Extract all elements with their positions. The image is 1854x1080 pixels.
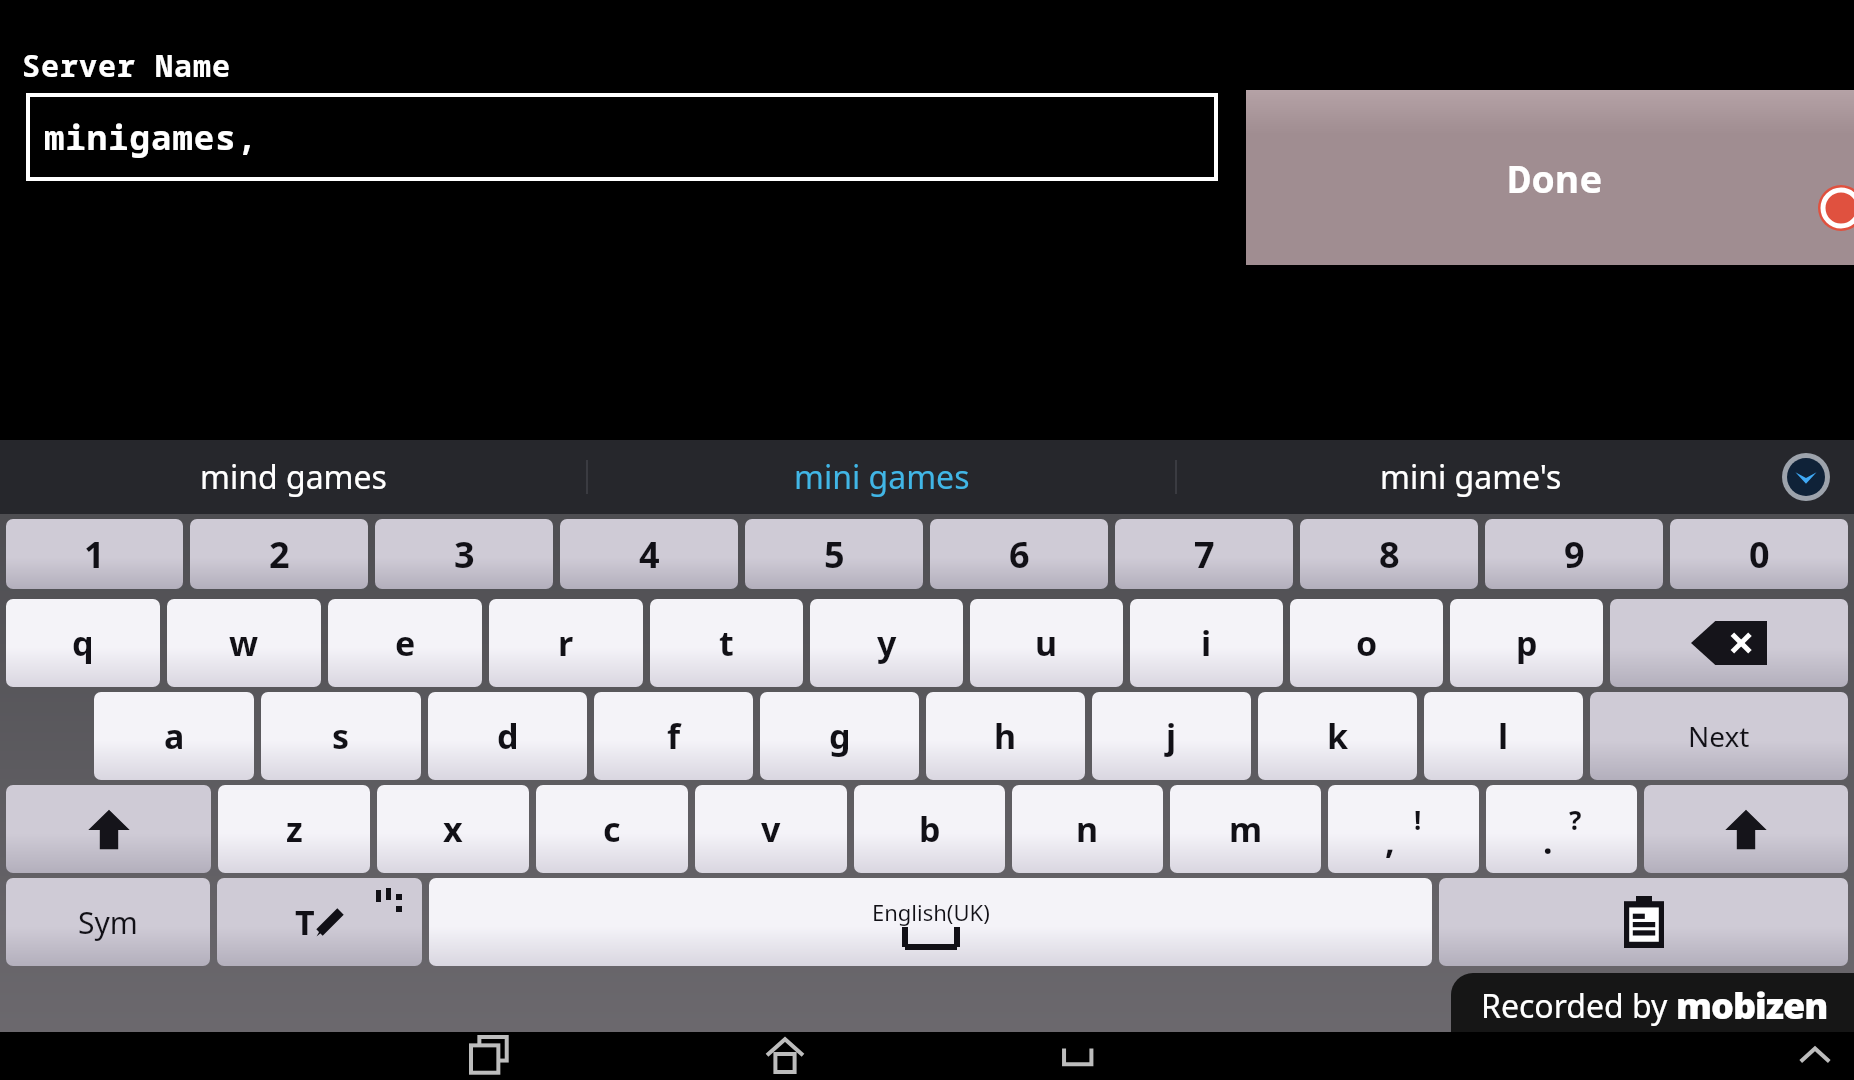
staticText: 7 <box>1194 530 1215 579</box>
staticText: a <box>164 713 185 759</box>
staticText: . <box>1543 818 1553 864</box>
staticText: f <box>667 713 681 759</box>
button[interactable]: , <box>1328 785 1479 873</box>
staticText: mind games <box>200 455 387 499</box>
staticText: Done <box>1508 152 1604 204</box>
button[interactable]: m <box>1170 785 1321 873</box>
staticText: i <box>1201 620 1212 666</box>
button[interactable]: n <box>1012 785 1163 873</box>
staticText: English(UK) <box>872 897 990 927</box>
button[interactable]: Shift <box>6 785 211 873</box>
button[interactable]: o <box>1290 599 1443 687</box>
button[interactable]: l <box>1424 692 1583 780</box>
button[interactable]: p <box>1450 599 1603 687</box>
button[interactable]: 7 <box>1115 519 1293 589</box>
staticText: 8 <box>1379 530 1400 579</box>
button[interactable]: Back <box>1052 1032 1108 1080</box>
staticText: l <box>1498 713 1509 759</box>
button[interactable]: Home <box>757 1032 813 1080</box>
staticText: Sym <box>78 902 138 943</box>
staticText: u <box>1035 620 1058 666</box>
button[interactable]: Backspace <box>1610 599 1848 687</box>
staticText: m <box>1229 806 1263 852</box>
button[interactable]: x <box>377 785 529 873</box>
staticText: ! <box>1414 802 1422 837</box>
button[interactable]: 0 <box>1670 519 1848 589</box>
staticText: e <box>395 620 416 666</box>
button[interactable]: f <box>594 692 753 780</box>
button[interactable]: d <box>428 692 587 780</box>
button[interactable]: Change input method <box>217 878 422 966</box>
button[interactable]: a <box>94 692 254 780</box>
button[interactable]: Expand suggestions <box>1780 451 1832 503</box>
button[interactable]: c <box>536 785 688 873</box>
button[interactable]: mini game's <box>1177 440 1764 514</box>
staticText: h <box>994 713 1017 759</box>
button[interactable]: Sym <box>6 878 210 966</box>
button[interactable]: i <box>1130 599 1283 687</box>
staticText: mini games <box>794 455 970 499</box>
staticText: x <box>443 806 463 852</box>
staticText: s <box>332 713 350 759</box>
staticText: 1 <box>84 530 105 579</box>
staticText: 5 <box>824 530 845 579</box>
staticText: , <box>1385 818 1395 864</box>
staticText: o <box>1356 620 1378 666</box>
button[interactable]: y <box>810 599 963 687</box>
button[interactable]: u <box>970 599 1123 687</box>
button[interactable]: 4 <box>560 519 738 589</box>
button[interactable]: Next <box>1590 692 1848 780</box>
button[interactable]: mind games <box>0 440 586 514</box>
button[interactable]: k <box>1258 692 1417 780</box>
staticText: c <box>603 806 621 852</box>
button[interactable]: Recents <box>462 1032 518 1080</box>
button[interactable]: 2 <box>190 519 368 589</box>
button[interactable]: t <box>650 599 803 687</box>
staticText: Server Name <box>22 45 231 86</box>
button[interactable]: Clipboard <box>1439 878 1848 966</box>
staticText: 6 <box>1009 530 1030 579</box>
staticText: 4 <box>639 530 660 579</box>
staticText: T <box>295 899 315 945</box>
button[interactable]: j <box>1092 692 1251 780</box>
button[interactable]: Space <box>429 878 1432 966</box>
button[interactable]: g <box>760 692 919 780</box>
button[interactable]: Done <box>1246 90 1854 265</box>
staticText: r <box>558 620 574 666</box>
staticText: ? <box>1569 802 1582 837</box>
button[interactable]: minigames, <box>26 93 1218 181</box>
button[interactable]: 5 <box>745 519 923 589</box>
button[interactable]: v <box>695 785 847 873</box>
staticText: Next <box>1688 717 1750 755</box>
button[interactable]: q <box>6 599 160 687</box>
staticText: z <box>286 806 303 852</box>
staticText: g <box>829 713 851 759</box>
staticText: 9 <box>1564 530 1585 579</box>
staticText: minigames, <box>44 114 258 160</box>
button[interactable]: 9 <box>1485 519 1663 589</box>
staticText: p <box>1516 620 1538 666</box>
button[interactable]: e <box>328 599 482 687</box>
button[interactable]: r <box>489 599 643 687</box>
button[interactable]: h <box>926 692 1085 780</box>
button[interactable]: mini games <box>588 440 1175 514</box>
button[interactable]: s <box>261 692 421 780</box>
button[interactable]: . <box>1486 785 1637 873</box>
staticText: d <box>497 713 519 759</box>
staticText: k <box>1327 713 1349 759</box>
staticText: 3 <box>454 530 475 579</box>
button[interactable]: 8 <box>1300 519 1478 589</box>
staticText: v <box>761 806 781 852</box>
button[interactable]: Shift <box>1644 785 1848 873</box>
button[interactable]: z <box>218 785 370 873</box>
button[interactable]: 6 <box>930 519 1108 589</box>
staticText: 2 <box>269 530 290 579</box>
button[interactable]: b <box>854 785 1005 873</box>
button[interactable]: 1 <box>6 519 183 589</box>
staticText: t <box>719 620 734 666</box>
staticText: q <box>72 620 94 666</box>
button[interactable]: 3 <box>375 519 553 589</box>
staticText: n <box>1076 806 1099 852</box>
button[interactable]: w <box>167 599 321 687</box>
button[interactable]: Expand <box>1790 1032 1840 1080</box>
